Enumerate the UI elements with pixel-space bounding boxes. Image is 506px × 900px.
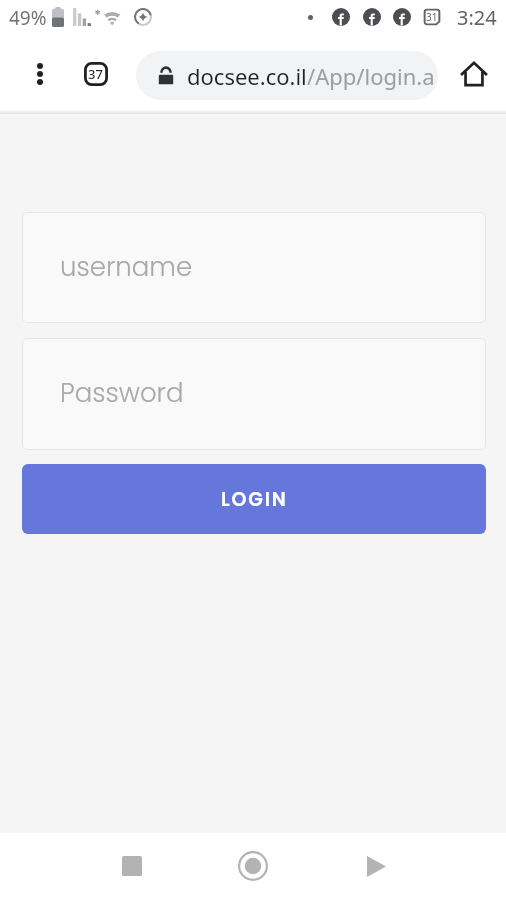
button[interactable]: Home	[227, 840, 279, 892]
button[interactable]: Password	[22, 338, 486, 450]
button[interactable]: More options	[24, 58, 55, 89]
staticText: /App/login.a	[307, 61, 435, 91]
staticText: Password	[60, 375, 184, 411]
staticText: 3:24	[457, 4, 497, 31]
staticText: docsee.co.il	[187, 61, 307, 91]
button[interactable]: LOGIN	[22, 464, 486, 534]
staticText: 31	[426, 10, 438, 24]
button[interactable]: Back	[350, 840, 402, 892]
button[interactable]: username	[22, 212, 486, 323]
button[interactable]: Home page	[457, 57, 490, 90]
staticText: 49%	[9, 5, 47, 31]
button[interactable]: docsee.co.il	[136, 51, 438, 100]
button[interactable]: Switch tabs	[80, 58, 111, 89]
staticText: LOGIN	[221, 486, 288, 513]
staticText: username	[60, 249, 193, 285]
staticText: 37	[88, 65, 103, 83]
button[interactable]: Recent apps	[106, 840, 158, 892]
